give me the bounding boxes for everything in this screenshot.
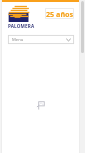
button[interactable]: Palomera home <box>8 5 35 29</box>
other: Loading <box>36 101 45 110</box>
button[interactable]: Select menu <box>8 35 74 44</box>
staticText: PALOMERA <box>8 23 35 29</box>
staticText: 25 años <box>46 9 74 19</box>
staticText: Menu <box>12 37 24 43</box>
button[interactable]: 25 años <box>45 8 74 19</box>
